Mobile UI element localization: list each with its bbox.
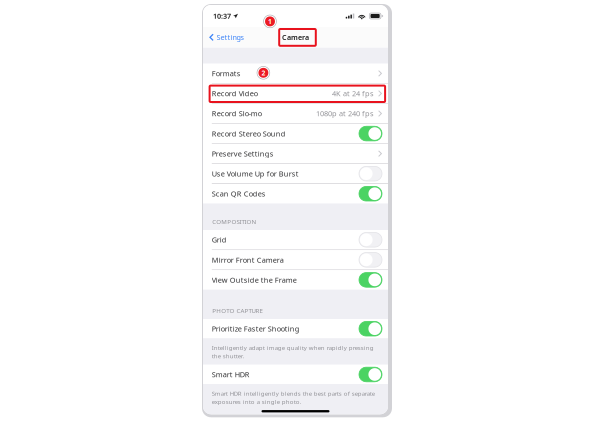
button[interactable]: Prioritize Faster Shooting: [203, 319, 388, 338]
button[interactable]: Mirror Front Camera: [203, 250, 388, 269]
button[interactable]: Preserve Settings: [203, 144, 388, 163]
staticText: Prioritize Faster Shooting: [212, 324, 300, 334]
staticText: the shutter.: [212, 352, 245, 360]
staticText: 10:37: [213, 11, 231, 21]
button[interactable]: Grid: [203, 230, 388, 249]
staticText: Preserve Settings: [212, 149, 274, 159]
staticText: Smart HDR intelligently blends the best …: [212, 389, 375, 398]
staticText: 4K at 24 fps: [332, 88, 374, 98]
staticText: 2: [261, 68, 265, 77]
staticText: View Outside the Frame: [212, 275, 297, 285]
staticText: Smart HDR: [212, 369, 250, 379]
button[interactable]: Use Volume Up for Burst: [203, 164, 388, 183]
staticText: exposures into a single photo.: [212, 398, 302, 406]
button[interactable]: Smart HDR: [203, 365, 388, 384]
staticText: Record Stereo Sound: [212, 129, 286, 139]
button[interactable]: Record Slo-mo: [203, 104, 388, 123]
staticText: Record Video: [212, 88, 258, 98]
button[interactable]: View Outside the Frame: [203, 270, 388, 289]
staticText: COMPOSITION: [212, 217, 256, 226]
staticText: PHOTO CAPTURE: [212, 306, 262, 315]
staticText: Scan QR Codes: [212, 189, 266, 199]
staticText: Grid: [212, 235, 227, 245]
staticText: Use Volume Up for Burst: [212, 169, 299, 179]
button[interactable]: Record Video: [203, 84, 388, 103]
button[interactable]: Scan QR Codes: [203, 184, 388, 203]
button[interactable]: Record Stereo Sound: [203, 124, 388, 143]
staticText: 1: [268, 17, 272, 26]
staticText: Formats: [212, 68, 241, 78]
button[interactable]: Settings: [203, 27, 248, 48]
staticText: Record Slo-mo: [212, 108, 262, 118]
staticText: Mirror Front Camera: [212, 255, 284, 265]
staticText: Settings: [216, 32, 243, 42]
staticText: Intelligently adapt image quality when r…: [212, 344, 374, 352]
staticText: 1080p at 240 fps: [316, 108, 374, 118]
staticText: Camera: [282, 32, 309, 42]
button[interactable]: Formats: [203, 64, 388, 83]
